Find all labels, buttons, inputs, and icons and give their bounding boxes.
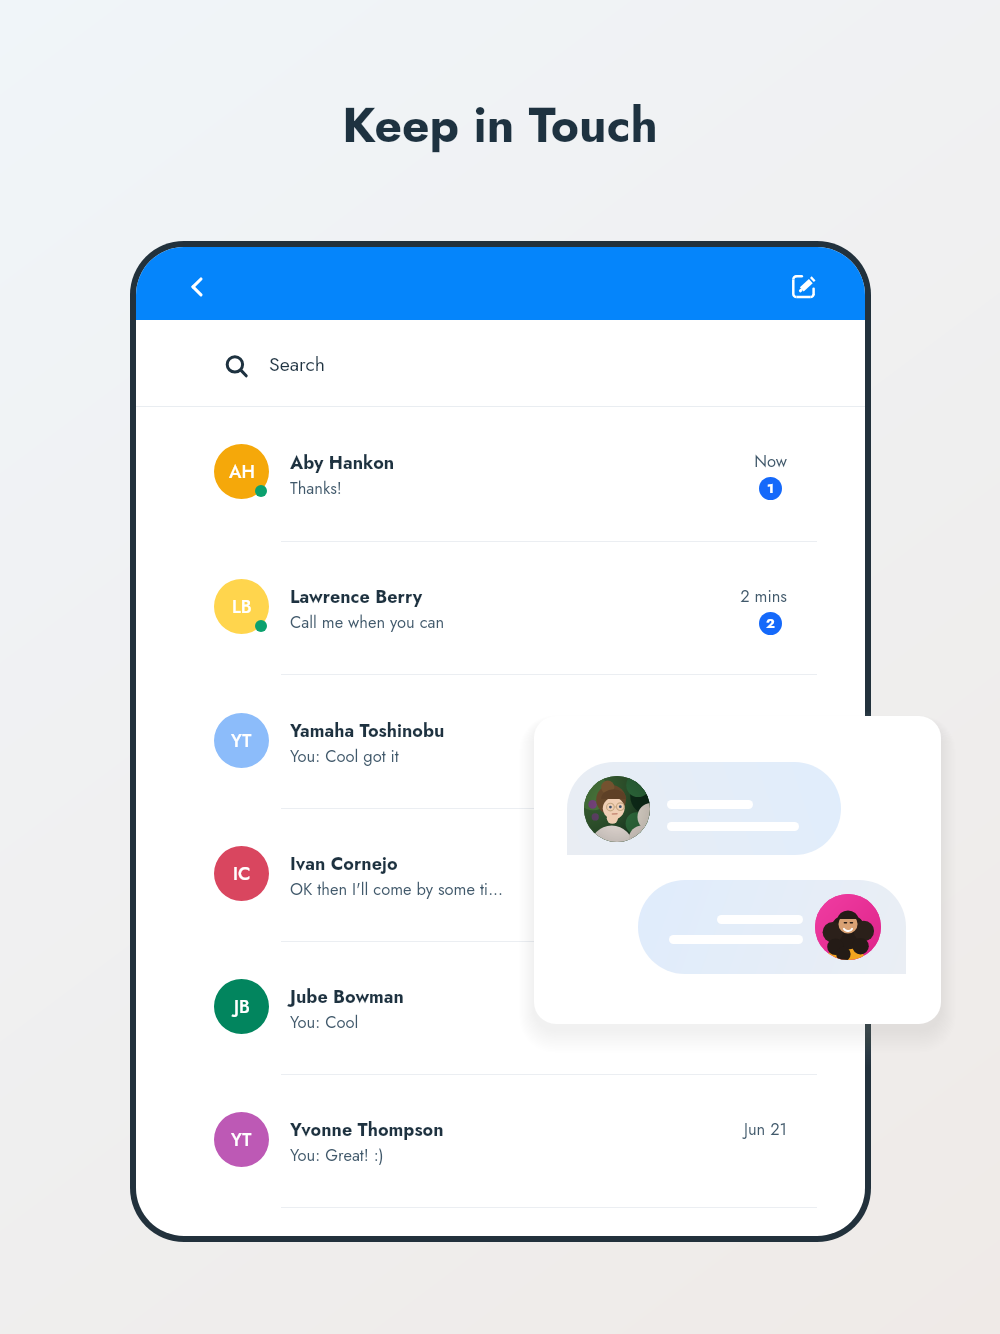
staticText: Jun 21	[743, 1117, 787, 1141]
button[interactable]: Compose new message	[782, 262, 826, 306]
staticText: Ivan Cornejo	[290, 851, 398, 877]
staticText: 2	[766, 614, 775, 634]
staticText: YT	[231, 728, 252, 754]
staticText: Aby Hankon	[290, 450, 395, 476]
button[interactable]: YT	[136, 1075, 865, 1208]
staticText: JB	[234, 994, 250, 1020]
staticText: Lawrence Berry	[290, 584, 423, 610]
staticText: OK then I'll come by some ti...	[290, 877, 503, 901]
staticText: You: Cool got it	[290, 744, 399, 768]
staticText: AH	[229, 459, 255, 485]
staticText: 2 mins	[740, 584, 787, 608]
button[interactable]: Back	[174, 262, 218, 306]
button[interactable]: LB	[136, 542, 865, 675]
staticText: Yvonne Thompson	[290, 1117, 444, 1143]
button[interactable]: JB	[136, 942, 865, 1075]
button[interactable]: IC	[136, 809, 865, 942]
staticText: Yamaha Toshinobu	[290, 718, 445, 744]
staticText: Thanks!	[290, 476, 342, 500]
staticText: Now	[754, 449, 787, 473]
staticText: IC	[233, 861, 251, 887]
staticText: Search	[269, 350, 326, 378]
button[interactable]: Search	[136, 320, 865, 407]
button[interactable]: AH	[136, 406, 865, 542]
staticText: You: Cool	[290, 1010, 359, 1034]
staticText: You: Great! :)	[290, 1143, 384, 1167]
staticText: Keep in Touch	[0, 91, 1000, 160]
staticText: YT	[231, 1127, 252, 1153]
button[interactable]: YT	[136, 676, 865, 809]
staticText: Call me when you can	[290, 610, 445, 634]
staticText: LB	[232, 594, 252, 620]
staticText: 1	[767, 479, 774, 499]
staticText: Jube Bowman	[290, 984, 404, 1010]
